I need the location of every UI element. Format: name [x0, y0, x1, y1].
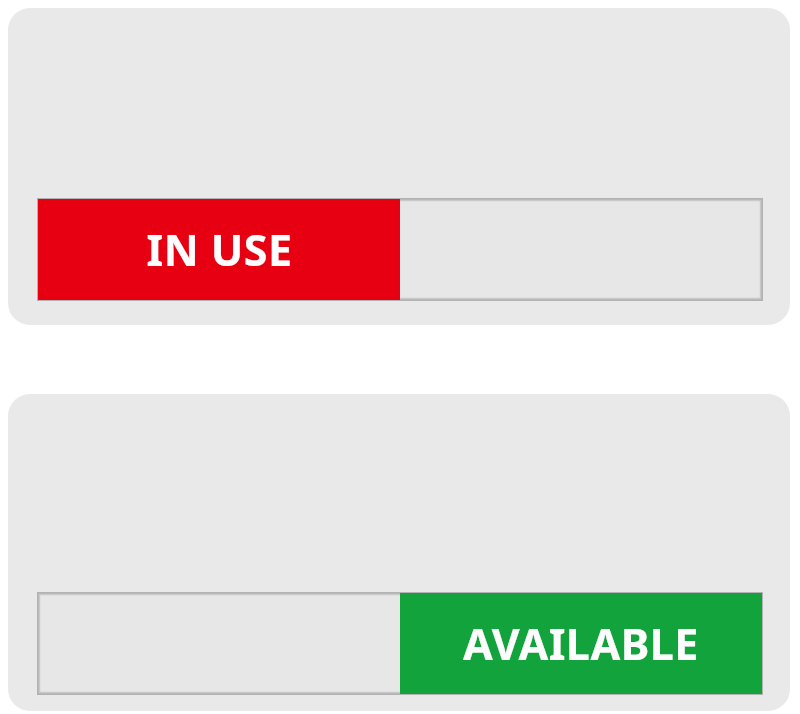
button[interactable]: IN USE [8, 8, 790, 325]
staticText: IN USE [146, 220, 293, 279]
button[interactable]: AVAILABLE [8, 394, 790, 711]
staticText: AVAILABLE [463, 614, 699, 673]
